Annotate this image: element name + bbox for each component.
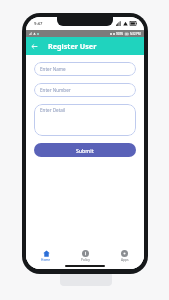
staticText: Enter Detail xyxy=(40,107,66,113)
button[interactable]: Policy xyxy=(66,247,105,264)
staticText: Enter Name xyxy=(40,66,66,72)
staticText: Enter Number xyxy=(40,87,71,93)
button[interactable]: Submit xyxy=(34,143,136,157)
button[interactable]: Home xyxy=(26,247,66,264)
staticText: Submit xyxy=(76,147,94,154)
button[interactable]: Back xyxy=(26,38,42,54)
staticText: Home xyxy=(41,258,51,262)
staticText: Policy xyxy=(81,258,90,262)
button[interactable]: Apps xyxy=(105,247,144,264)
button[interactable]: Enter Detail xyxy=(34,104,136,136)
staticText: 5:32 PM xyxy=(130,32,141,36)
staticText: 9:47 xyxy=(34,21,43,27)
button[interactable]: Enter Number xyxy=(34,83,136,97)
staticText: Register User xyxy=(48,41,97,51)
staticText: Apps xyxy=(121,258,129,262)
button[interactable]: Enter Name xyxy=(34,62,136,76)
staticText: 100% xyxy=(116,32,124,36)
